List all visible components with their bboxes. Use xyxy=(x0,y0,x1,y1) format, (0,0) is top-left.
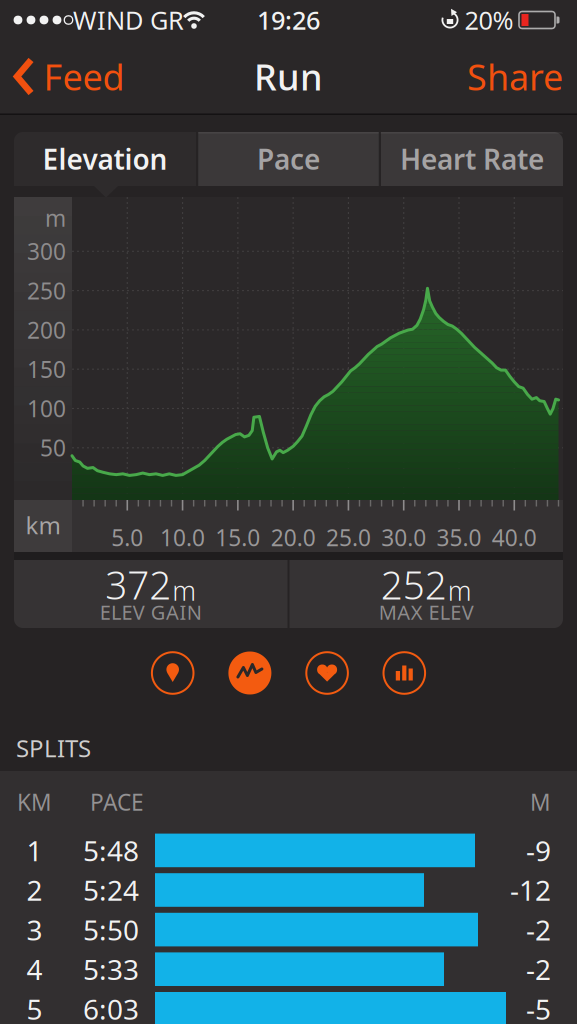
staticText: -12 xyxy=(510,871,551,909)
staticText: 19:26 xyxy=(257,3,320,37)
staticText: 100 xyxy=(27,393,66,423)
staticText: MAX ELEV xyxy=(379,599,474,625)
button[interactable]: Back to Feed xyxy=(13,44,124,109)
staticText: 5.0 xyxy=(111,522,143,552)
staticText: 20.0 xyxy=(271,522,316,552)
staticText: Heart Rate xyxy=(400,140,544,178)
staticText: M xyxy=(530,787,551,817)
staticText: 5:50 xyxy=(83,911,139,948)
staticText: ELEV GAIN xyxy=(100,599,202,625)
staticText: 4 xyxy=(26,951,42,988)
button[interactable]: Analysis xyxy=(228,651,272,695)
staticText: 15.0 xyxy=(215,522,260,552)
staticText: m xyxy=(172,573,196,608)
staticText: 2 xyxy=(26,871,42,909)
staticText: SPLITS xyxy=(16,732,91,764)
staticText: Pace xyxy=(257,140,320,178)
staticText: m xyxy=(45,203,66,233)
staticText: Share xyxy=(467,53,563,100)
staticText: 252 xyxy=(381,559,447,610)
button[interactable]: Pace xyxy=(198,132,379,186)
button[interactable]: Heart Rate xyxy=(381,132,563,186)
staticText: PACE xyxy=(90,787,144,817)
staticText: 50 xyxy=(40,433,66,463)
staticText: Run xyxy=(254,53,323,100)
staticText: -5 xyxy=(526,990,551,1024)
staticText: 1 xyxy=(26,832,42,869)
staticText: 5:48 xyxy=(83,832,139,869)
staticText: 10.0 xyxy=(160,522,205,552)
staticText: 5 xyxy=(26,990,42,1024)
staticText: m xyxy=(448,573,472,608)
staticText: 250 xyxy=(27,275,66,306)
button[interactable]: Elevation xyxy=(14,132,196,186)
button[interactable]: Map xyxy=(151,651,195,695)
staticText: 5:24 xyxy=(83,871,139,909)
staticText: WIND GR xyxy=(73,3,184,37)
staticText: 30.0 xyxy=(381,522,426,552)
staticText: 20% xyxy=(464,3,513,37)
staticText: -2 xyxy=(526,911,551,948)
staticText: 6:03 xyxy=(83,990,139,1024)
staticText: 25.0 xyxy=(326,522,371,552)
staticText: Elevation xyxy=(42,140,167,178)
staticText: -9 xyxy=(526,832,551,869)
staticText: 40.0 xyxy=(492,522,537,552)
staticText: -2 xyxy=(526,951,551,988)
button[interactable]: Charts xyxy=(382,651,426,695)
button[interactable]: Heart rate xyxy=(305,651,349,695)
staticText: Feed xyxy=(43,53,124,100)
staticText: 35.0 xyxy=(436,522,481,552)
staticText: KM xyxy=(17,787,52,817)
staticText: 3 xyxy=(26,911,42,948)
staticText: 150 xyxy=(27,354,66,384)
staticText: 5:33 xyxy=(83,951,139,988)
staticText: km xyxy=(25,509,60,541)
button[interactable]: Share xyxy=(423,41,563,112)
staticText: 200 xyxy=(27,315,66,345)
staticText: 372 xyxy=(105,559,171,610)
staticText: 300 xyxy=(27,236,66,266)
